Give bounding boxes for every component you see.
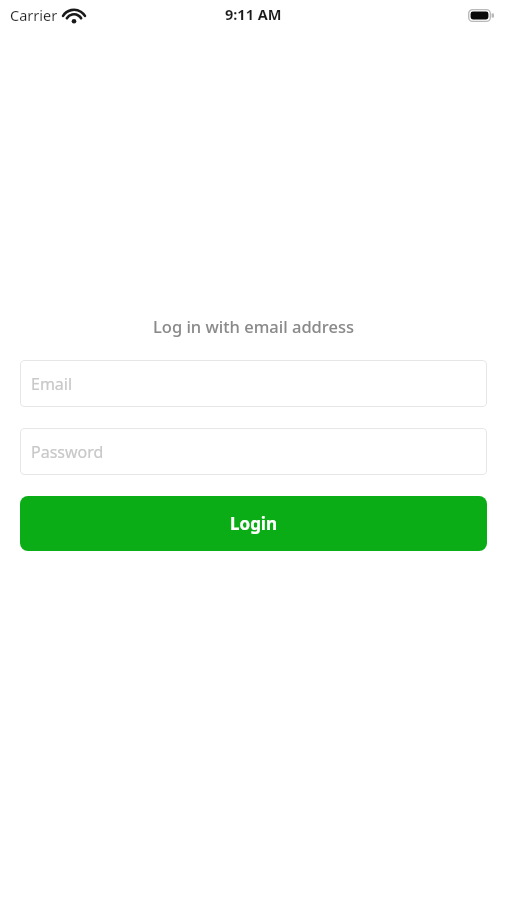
button[interactable]: Password <box>20 428 487 475</box>
staticText: Password <box>31 441 104 463</box>
staticText: Carrier <box>10 5 58 25</box>
button[interactable]: Login <box>20 496 487 551</box>
staticText: Email <box>31 373 73 395</box>
staticText: 9:11 AM <box>225 4 282 24</box>
staticText: Log in with email address <box>0 315 507 337</box>
staticText: Login <box>230 512 278 535</box>
button[interactable]: Email <box>20 360 487 407</box>
